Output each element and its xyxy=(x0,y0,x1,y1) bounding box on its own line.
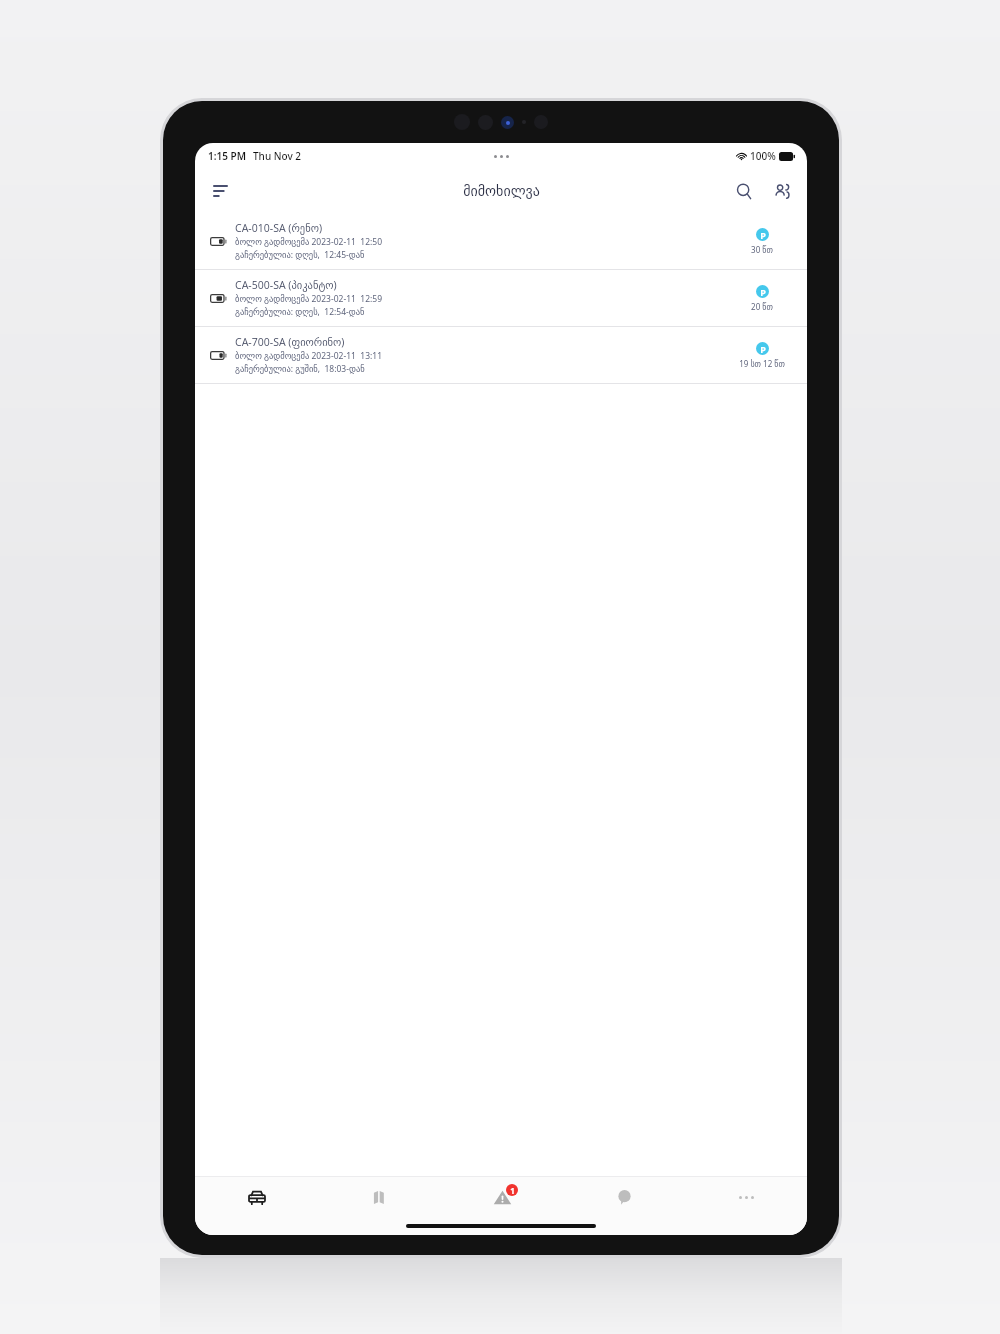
staticText: P xyxy=(760,343,766,355)
staticText: P xyxy=(760,229,766,241)
staticText: 1:15 PM xyxy=(208,149,246,163)
staticText: მიმოხილვა xyxy=(463,183,540,199)
staticText: CA-500-SA (პიკანტო) xyxy=(235,278,337,292)
button[interactable]: Map xyxy=(318,1177,441,1217)
staticText: Thu Nov 2 xyxy=(253,149,302,163)
staticText: 19 სთ 12 წთ xyxy=(739,358,785,369)
button[interactable]: CA-500-SA (პიკანტო) xyxy=(195,270,807,326)
staticText: P xyxy=(760,286,766,298)
staticText: 100% xyxy=(750,149,776,163)
button[interactable]: Search xyxy=(727,174,761,208)
staticText: 20 წთ xyxy=(751,301,773,312)
staticText: გაჩერებულია: დღეს, 12:54-დან xyxy=(235,306,365,318)
button[interactable]: Messages xyxy=(563,1177,685,1217)
button[interactable]: Alerts xyxy=(441,1177,563,1217)
staticText: ბოლო გადმოცემა 2023-02-11 12:50 xyxy=(235,236,383,248)
staticText: ბოლო გადმოცემა 2023-02-11 13:11 xyxy=(235,350,383,362)
staticText: CA-700-SA (ფიორინო) xyxy=(235,335,345,349)
button[interactable]: CA-010-SA (რენო) xyxy=(195,213,807,269)
button[interactable]: Filter xyxy=(203,174,237,208)
staticText: გაჩერებულია: დღეს, 12:45-დან xyxy=(235,249,365,261)
button[interactable]: More xyxy=(685,1177,807,1217)
staticText: ბოლო გადმოცემა 2023-02-11 12:59 xyxy=(235,293,383,305)
staticText: გაჩერებულია: გუშინ, 18:03-დან xyxy=(235,363,365,375)
button[interactable]: Vehicles xyxy=(195,1177,318,1217)
staticText: 1 xyxy=(510,1185,515,1196)
button[interactable]: Users xyxy=(765,174,799,208)
staticText: 30 წთ xyxy=(751,244,773,255)
button[interactable]: CA-700-SA (ფიორინო) xyxy=(195,327,807,383)
staticText: CA-010-SA (რენო) xyxy=(235,221,323,235)
